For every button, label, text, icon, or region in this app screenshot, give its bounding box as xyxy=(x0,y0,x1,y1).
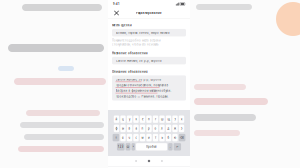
staticText: Название объявления xyxy=(112,51,148,55)
button[interactable]: щ xyxy=(166,115,171,123)
staticText: з xyxy=(174,117,175,121)
staticText: Редактирование xyxy=(136,11,162,15)
staticText: р xyxy=(148,127,150,130)
staticText: т xyxy=(155,136,156,139)
button[interactable]: Закрыть xyxy=(112,8,121,17)
staticText: я xyxy=(122,136,124,139)
staticText: с покупателем, чтобы его не искать xyxy=(112,43,158,46)
button[interactable]: г xyxy=(153,115,158,123)
staticText: ⇧ xyxy=(115,136,117,139)
staticText: Производство — Румыния. Продам. xyxy=(115,95,168,98)
staticText: Сапоги женские, 38 р-р, Европа xyxy=(115,78,160,81)
button[interactable]: д xyxy=(166,125,171,132)
staticText: Пробел xyxy=(146,145,157,148)
button[interactable]: п xyxy=(140,125,145,132)
staticText: г xyxy=(155,117,156,121)
staticText: л xyxy=(161,127,163,130)
staticText: Место сделки xyxy=(112,23,132,27)
staticText: . xyxy=(170,145,171,148)
button[interactable]: ю xyxy=(172,134,178,141)
staticText: щ xyxy=(167,117,169,121)
button[interactable]: е xyxy=(140,115,145,123)
button[interactable]: р xyxy=(146,125,152,132)
staticText: о xyxy=(154,127,156,130)
staticText: ю xyxy=(174,136,176,139)
button[interactable]: ц xyxy=(120,115,126,123)
button[interactable]: ⇧ xyxy=(113,134,119,141)
button[interactable]: 123 xyxy=(117,143,124,150)
button[interactable]: ь xyxy=(159,134,165,141)
button[interactable]: б xyxy=(166,134,171,141)
button[interactable]: э xyxy=(179,125,184,132)
button[interactable]: ф xyxy=(114,125,119,132)
staticText: д xyxy=(167,127,169,130)
button[interactable]: о xyxy=(153,125,158,132)
staticText: ы xyxy=(122,127,124,130)
staticText: ☺ xyxy=(126,145,129,148)
button[interactable]: в xyxy=(127,125,132,132)
button[interactable]: ч xyxy=(127,134,132,141)
button[interactable]: . xyxy=(168,143,172,150)
staticText: у xyxy=(129,117,130,121)
button[interactable]: ы xyxy=(120,125,126,132)
staticText: Алматы, Первая линия, метро Москва xyxy=(116,31,169,34)
button[interactable]: с xyxy=(133,134,139,141)
staticText: Продам отличные сапоги, покупала в xyxy=(115,83,168,87)
staticText: ш xyxy=(161,117,163,121)
staticText: ф xyxy=(115,127,117,130)
staticText: ц xyxy=(122,117,124,121)
staticText: Австрии в фирменном магазине обуви. xyxy=(115,89,171,92)
button[interactable]: к xyxy=(133,115,139,123)
button[interactable]: ↵ xyxy=(174,143,181,150)
button[interactable]: н xyxy=(146,115,152,123)
staticText: • xyxy=(133,145,134,148)
button[interactable]: й xyxy=(114,115,119,123)
button[interactable]: ☺ xyxy=(126,143,130,150)
button[interactable]: з xyxy=(172,115,178,123)
staticText: в xyxy=(128,127,130,130)
button[interactable]: ж xyxy=(172,125,178,132)
button[interactable]: Алматы, Первая линия, метро Москва xyxy=(112,29,186,36)
staticText: н xyxy=(148,117,150,121)
button[interactable]: я xyxy=(120,134,126,141)
staticText: м xyxy=(141,136,143,139)
staticText: Описание объявления xyxy=(112,70,148,73)
staticText: х xyxy=(181,117,182,121)
staticText: й xyxy=(115,117,117,121)
button[interactable]: а xyxy=(133,125,139,132)
staticText: п xyxy=(141,127,143,130)
button[interactable]: Сапоги женские, 38 р-р, Европа xyxy=(112,57,186,64)
button[interactable]: Пробел xyxy=(136,143,167,150)
button[interactable]: ш xyxy=(159,115,165,123)
button[interactable]: у xyxy=(127,115,132,123)
button[interactable]: л xyxy=(159,125,165,132)
button[interactable]: х xyxy=(179,115,184,123)
button[interactable]: т xyxy=(153,134,158,141)
button[interactable]: и xyxy=(146,134,152,141)
button[interactable]: м xyxy=(140,134,145,141)
staticText: и xyxy=(148,136,150,139)
staticText: ↵ xyxy=(176,145,178,148)
staticText: е xyxy=(142,117,143,121)
button[interactable]: ⌫ xyxy=(179,134,185,141)
staticText: б xyxy=(167,136,169,139)
staticText: э xyxy=(181,127,182,130)
staticText: 123 xyxy=(118,145,124,148)
staticText: ⌫ xyxy=(180,136,184,139)
staticText: 9:41 xyxy=(113,2,120,6)
staticText: Сапоги женские, 38 р-р, Европа xyxy=(116,59,161,62)
staticText: Покажите подробно место встречи xyxy=(112,39,161,42)
button[interactable]: • xyxy=(131,143,135,150)
staticText: ч xyxy=(128,136,130,139)
staticText: ж xyxy=(174,127,176,130)
